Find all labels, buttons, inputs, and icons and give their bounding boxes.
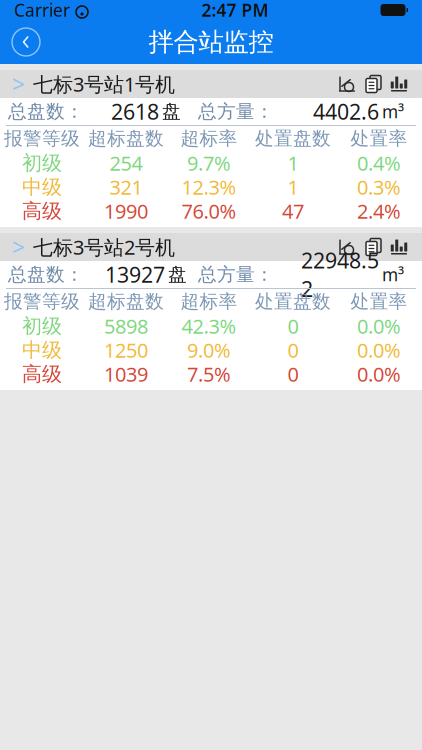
button[interactable]: 报表 [360, 233, 386, 261]
staticText: 0.0% [357, 361, 401, 387]
staticText: 处置盘数 [255, 127, 331, 150]
button[interactable]: 趋势查询 [334, 70, 360, 98]
staticText: 拌合站监控 [148, 26, 273, 57]
staticText: 47 [282, 198, 304, 224]
staticText: m³ [382, 263, 404, 286]
staticText: m³ [382, 100, 404, 123]
staticText: > [12, 69, 25, 99]
staticText: 0 [287, 313, 298, 339]
staticText: 中级 [22, 338, 62, 362]
button[interactable]: > [0, 233, 334, 261]
staticText: 超标率 [180, 290, 237, 313]
staticText: 高级 [22, 199, 62, 223]
staticText: 0.4% [357, 150, 401, 176]
button[interactable]: 报表 [360, 70, 386, 98]
staticText: 0.3% [357, 174, 401, 200]
staticText: 处置率 [350, 127, 407, 150]
staticText: 超标盘数 [88, 127, 164, 150]
staticText: 七标3号站2号机 [33, 234, 175, 260]
staticText: 1250 [104, 337, 148, 363]
staticText: 总方量： [198, 100, 274, 123]
staticText: 76.0% [181, 198, 236, 224]
staticText: 初级 [22, 314, 62, 338]
staticText: 高级 [22, 362, 62, 386]
staticText: 初级 [22, 151, 62, 175]
staticText: 1 [287, 150, 298, 176]
staticText: 中级 [22, 175, 62, 199]
staticText: 4402.6 [313, 97, 379, 126]
staticText: Carrier [14, 0, 70, 21]
staticText: 2618 [111, 97, 159, 126]
staticText: 0 [287, 337, 298, 363]
staticText: 0.0% [357, 337, 401, 363]
staticText: 22948.52 [301, 246, 379, 303]
staticText: 7.5% [187, 361, 231, 387]
staticText: 七标3号站1号机 [33, 71, 175, 97]
staticText: 1039 [104, 361, 148, 387]
button[interactable]: 统计图 [386, 70, 412, 98]
staticText: 9.7% [187, 150, 231, 176]
staticText: 总盘数： [8, 100, 84, 123]
button[interactable]: > [0, 70, 334, 98]
staticText: 盘 [162, 100, 181, 123]
staticText: 5898 [104, 313, 148, 339]
staticText: 12.3% [181, 174, 236, 200]
staticText: 254 [109, 150, 142, 176]
staticText: 处置盘数 [255, 290, 331, 313]
button[interactable]: 返回 [4, 22, 48, 62]
staticText: 总盘数： [8, 263, 84, 286]
staticText: 1 [287, 174, 298, 200]
staticText: 盘 [168, 263, 187, 286]
staticText: 42.3% [181, 313, 236, 339]
button[interactable]: 趋势查询 [334, 233, 360, 261]
staticText: 321 [109, 174, 142, 200]
staticText: 9.0% [187, 337, 231, 363]
staticText: 1990 [104, 198, 148, 224]
staticText: 报警等级 [4, 127, 80, 150]
button[interactable]: 统计图 [386, 233, 412, 261]
staticText: 2.4% [357, 198, 401, 224]
staticText: 0.0% [357, 313, 401, 339]
staticText: 13927 [105, 260, 165, 289]
staticText: 超标盘数 [88, 290, 164, 313]
staticText: 总方量： [198, 263, 274, 286]
staticText: 0 [287, 361, 298, 387]
staticText: > [12, 232, 25, 262]
staticText: 2:47 PM [201, 0, 268, 21]
staticText: 处置率 [350, 290, 407, 313]
staticText: 报警等级 [4, 290, 80, 313]
staticText: 超标率 [180, 127, 237, 150]
